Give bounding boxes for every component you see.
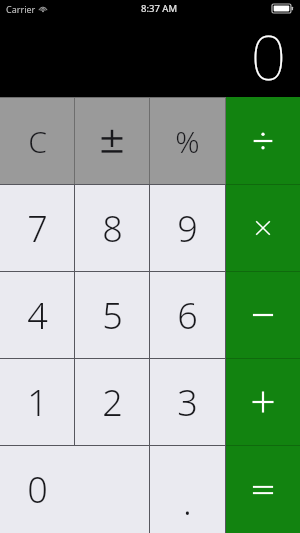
button[interactable]: 5 xyxy=(75,272,149,358)
staticText: C xyxy=(28,121,47,162)
button[interactable]: % xyxy=(150,98,225,184)
staticText: % xyxy=(175,121,200,162)
button[interactable]: Equals xyxy=(226,446,300,533)
staticText: 2 xyxy=(102,378,123,427)
staticText: 3 xyxy=(177,378,198,427)
button[interactable]: 3 xyxy=(150,359,225,445)
staticText: 7 xyxy=(27,204,48,253)
button[interactable]: 9 xyxy=(150,185,225,271)
staticText: 6 xyxy=(177,291,198,340)
button[interactable]: Operator xyxy=(226,185,300,271)
button[interactable]: 7 xyxy=(0,185,74,271)
button[interactable]: Divide xyxy=(226,97,300,184)
staticText: 9 xyxy=(177,204,198,253)
button[interactable]: 8 xyxy=(75,185,149,271)
button[interactable]: 1 xyxy=(0,359,74,445)
button[interactable]: 4 xyxy=(0,272,74,358)
button[interactable]: Plus minus xyxy=(75,98,149,184)
staticText: 5 xyxy=(102,291,123,340)
button[interactable]: Operator xyxy=(226,272,300,358)
staticText: 0 xyxy=(250,14,286,93)
staticText: 8 xyxy=(102,204,123,253)
staticText: 1 xyxy=(27,378,48,427)
button[interactable]: 0 xyxy=(0,446,149,533)
button[interactable]: C xyxy=(0,98,74,184)
staticText: 4 xyxy=(27,291,48,340)
staticText: . xyxy=(183,477,192,526)
button[interactable]: 6 xyxy=(150,272,225,358)
staticText: 0 xyxy=(27,465,48,514)
button[interactable]: Operator xyxy=(226,359,300,445)
button[interactable]: . xyxy=(150,446,225,533)
staticText: Carrier xyxy=(6,3,36,15)
button[interactable]: 2 xyxy=(75,359,149,445)
staticText: 8:37 AM xyxy=(141,2,178,15)
